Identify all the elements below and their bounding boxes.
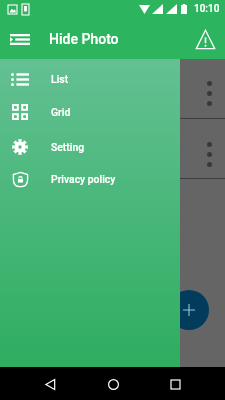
button[interactable]: Open navigation drawer <box>4 23 36 55</box>
button[interactable]: List <box>0 63 180 95</box>
button[interactable]: More options <box>0 59 225 119</box>
other: More options <box>207 81 212 106</box>
button[interactable]: Grid <box>0 96 180 128</box>
button[interactable]: Warning <box>192 26 218 52</box>
other: More options <box>207 142 212 167</box>
staticText: Privacy policy <box>51 173 116 185</box>
staticText: Setting <box>51 141 85 153</box>
button[interactable]: More options <box>0 119 225 179</box>
button[interactable]: Add <box>169 290 209 330</box>
staticText: Grid <box>51 106 71 118</box>
button[interactable]: Setting <box>0 131 180 163</box>
button[interactable]: Home <box>101 372 125 396</box>
button[interactable]: Back <box>38 372 62 396</box>
button[interactable]: Privacy policy <box>0 163 180 195</box>
button[interactable]: Recents <box>163 372 187 396</box>
staticText: 10:10 <box>194 3 220 15</box>
staticText: List <box>51 73 69 85</box>
staticText: Hide Photo <box>49 31 119 47</box>
